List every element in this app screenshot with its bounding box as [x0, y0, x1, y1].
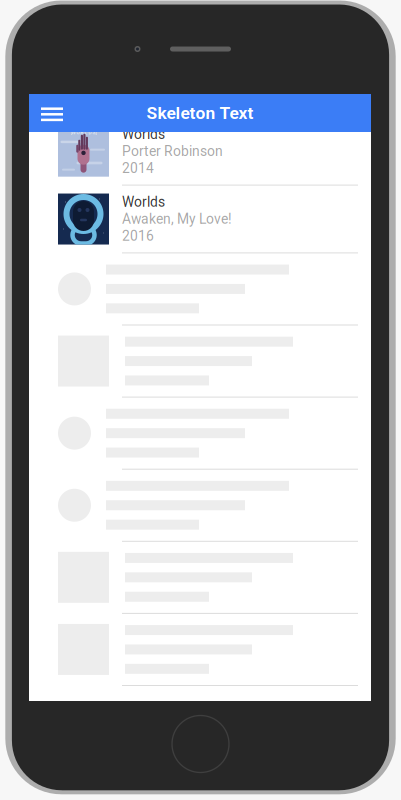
- button[interactable]: [29, 398, 371, 469]
- button[interactable]: [29, 542, 371, 613]
- button[interactable]: Worlds: [29, 186, 371, 252]
- button[interactable]: [29, 253, 371, 324]
- staticText: [W O R L D S]: [70, 130, 96, 135]
- staticText: 2016: [122, 228, 154, 244]
- button[interactable]: Menu: [29, 94, 75, 132]
- staticText: Awaken, My Love!: [122, 211, 232, 227]
- staticText: 2014: [122, 160, 154, 176]
- staticText: Skeleton Text: [146, 103, 253, 123]
- staticText: Worlds: [122, 194, 165, 210]
- button[interactable]: [29, 325, 371, 397]
- staticText: Porter Robinson: [122, 143, 223, 159]
- staticText: Worlds: [122, 126, 165, 142]
- button[interactable]: [W O R L D S]: [29, 118, 371, 185]
- button[interactable]: [29, 614, 371, 685]
- button[interactable]: [29, 470, 371, 541]
